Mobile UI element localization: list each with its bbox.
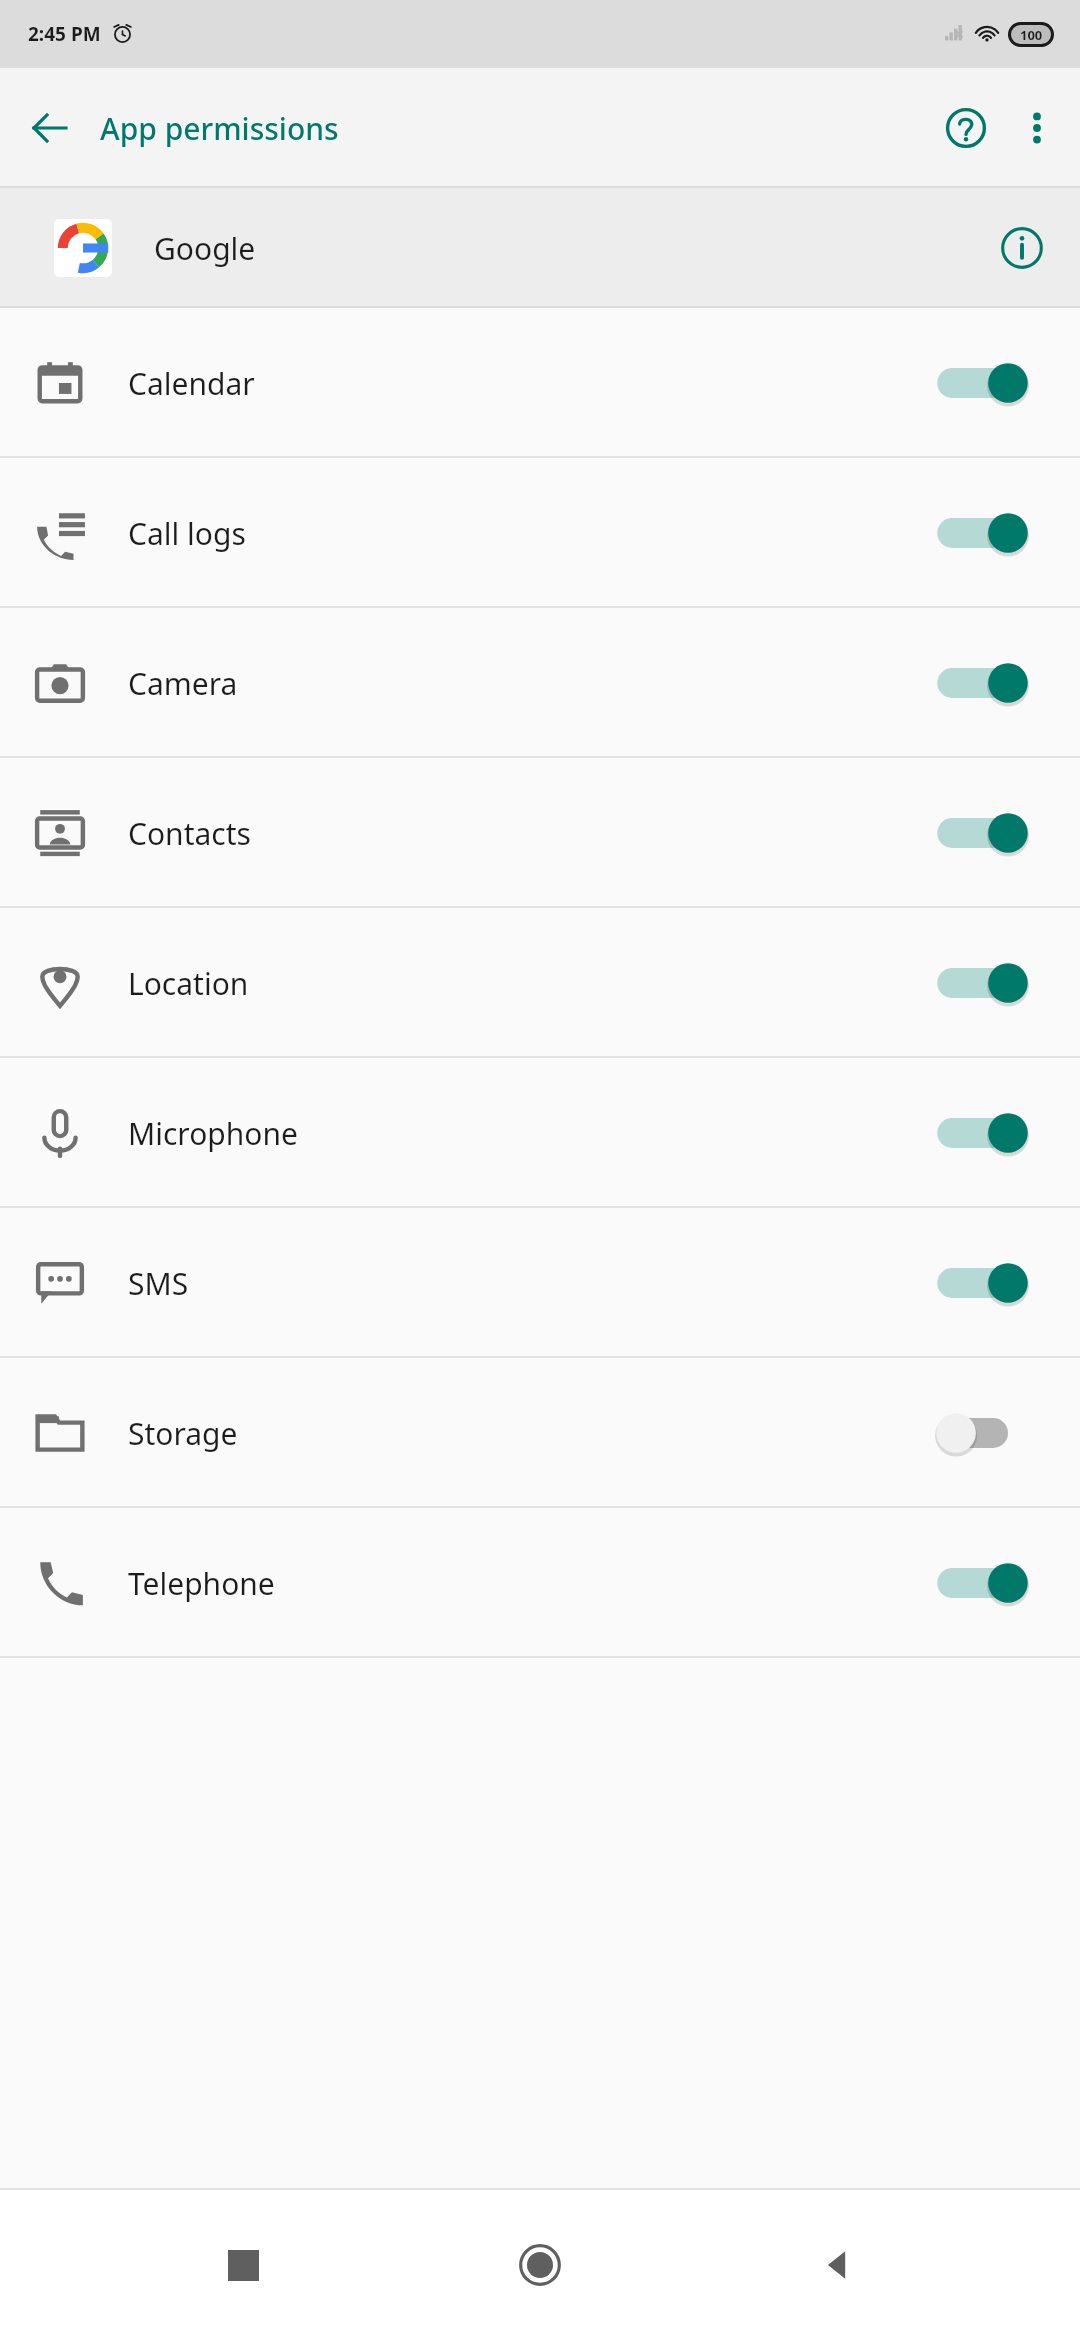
staticText: Location <box>128 963 249 1004</box>
staticText: Contacts <box>128 813 251 854</box>
button[interactable]: Help <box>928 90 1004 166</box>
button[interactable]: Contacts <box>0 758 1080 908</box>
button[interactable]: On <box>930 1253 1034 1313</box>
staticText: 2:45 PM <box>28 21 101 47</box>
button[interactable]: On <box>930 803 1034 863</box>
button[interactable]: Recent apps <box>188 2210 298 2320</box>
staticText: Microphone <box>128 1113 298 1154</box>
button[interactable]: On <box>930 353 1034 413</box>
button[interactable]: Location <box>0 908 1080 1058</box>
button[interactable]: Telephone <box>0 1508 1080 1658</box>
button[interactable]: Calendar <box>0 308 1080 458</box>
staticText: Call logs <box>128 513 246 554</box>
staticText: App permissions <box>100 108 339 149</box>
button[interactable]: SMS <box>0 1208 1080 1358</box>
button[interactable]: More options <box>1004 90 1070 166</box>
button[interactable]: Microphone <box>0 1058 1080 1208</box>
button[interactable]: Off <box>930 1403 1034 1463</box>
staticText: Google <box>154 228 256 269</box>
button[interactable]: Storage <box>0 1358 1080 1508</box>
button[interactable]: Call logs <box>0 458 1080 608</box>
button[interactable]: Camera <box>0 608 1080 758</box>
staticText: 100 <box>1020 26 1043 44</box>
button[interactable]: On <box>930 1103 1034 1163</box>
button[interactable]: On <box>930 953 1034 1013</box>
staticText: Camera <box>128 663 238 704</box>
button[interactable]: On <box>930 503 1034 563</box>
button[interactable]: Google <box>0 188 1080 308</box>
staticText: Storage <box>128 1413 238 1454</box>
button[interactable]: Home <box>485 2210 595 2320</box>
button[interactable]: App info <box>978 204 1066 292</box>
staticText: Calendar <box>128 363 255 404</box>
staticText: Telephone <box>128 1563 275 1604</box>
button[interactable]: On <box>930 1553 1034 1613</box>
staticText: SMS <box>128 1263 189 1304</box>
button[interactable]: On <box>930 653 1034 713</box>
button[interactable]: Back <box>14 92 86 164</box>
button[interactable]: Back <box>783 2210 893 2320</box>
